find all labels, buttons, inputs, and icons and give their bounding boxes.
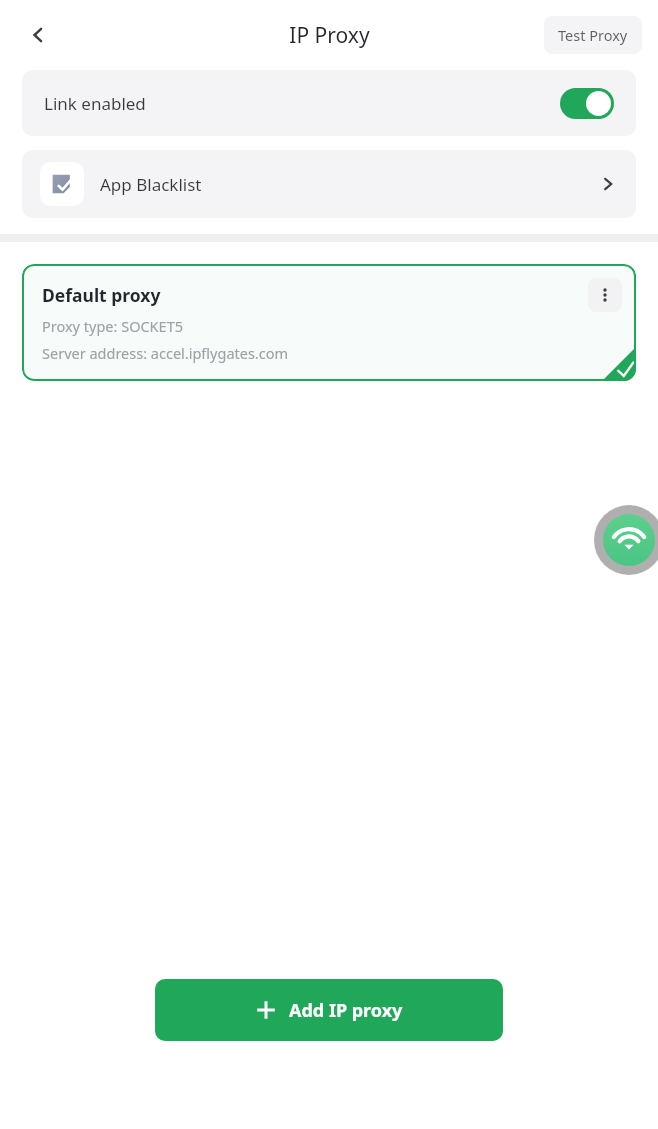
staticText: App Blacklist [100, 173, 202, 196]
staticText: Default proxy [42, 283, 161, 307]
button[interactable]: More options [588, 278, 622, 312]
button[interactable]: Network status [594, 505, 658, 575]
button[interactable]: Back [14, 11, 62, 59]
staticText: Proxy type: SOCKET5 [42, 316, 184, 336]
button[interactable]: Test Proxy [544, 16, 642, 54]
staticText: IP Proxy [289, 21, 370, 50]
staticText: Server address: accel.ipflygates.com [42, 343, 289, 363]
staticText: Link enabled [44, 92, 146, 115]
staticText: Add IP proxy [289, 998, 403, 1023]
button[interactable]: Add IP proxy [155, 979, 503, 1041]
staticText: Test Proxy [558, 25, 628, 45]
button[interactable] [560, 88, 614, 119]
button[interactable]: Link enabled [22, 70, 636, 136]
button[interactable]: App Blacklist [22, 150, 636, 218]
button[interactable]: Default proxy [22, 264, 636, 381]
